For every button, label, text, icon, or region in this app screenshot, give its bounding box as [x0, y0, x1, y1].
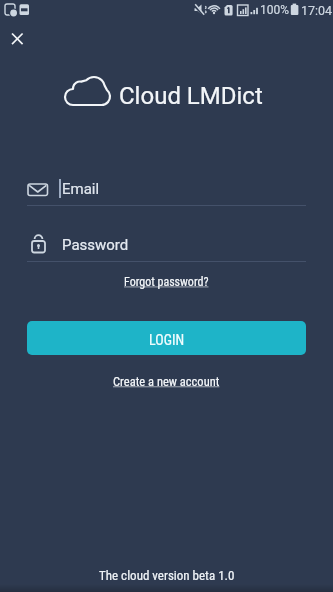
button[interactable]: Email [24, 172, 308, 208]
button[interactable]: Forgot password? [108, 269, 224, 295]
staticText: Email [62, 180, 100, 198]
staticText: Password [62, 236, 129, 254]
button[interactable]: Create a new account [100, 368, 233, 394]
button[interactable] [8, 29, 28, 49]
button[interactable]: Password [24, 230, 308, 266]
staticText: 17:04 [301, 3, 333, 18]
staticText: Forgot password? [124, 275, 209, 289]
button[interactable]: LOGIN [27, 321, 306, 355]
staticText: LOGIN [149, 332, 185, 348]
staticText: The cloud version beta 1.0 [99, 568, 235, 583]
staticText: Create a new account [113, 374, 220, 389]
staticText: 100% [260, 3, 290, 17]
staticText: Cloud LMDict [119, 82, 263, 110]
